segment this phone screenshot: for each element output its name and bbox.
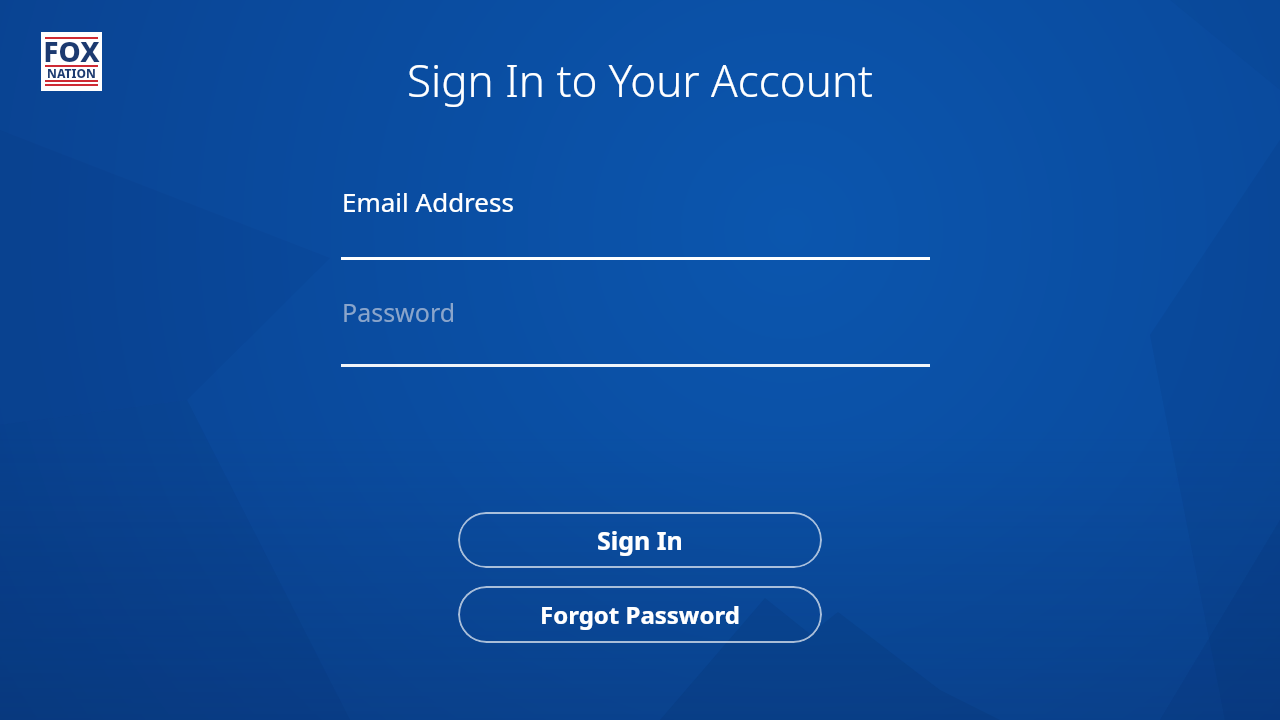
staticText: Sign In [597,523,683,557]
staticText: FOX [41,32,102,70]
button[interactable] [341,285,930,367]
staticText: Password [342,295,456,329]
button[interactable]: Forgot Password [458,586,822,643]
staticText: NATION [41,65,102,81]
staticText: Email Address [342,184,514,219]
staticText: Forgot Password [540,598,740,631]
staticText: Sign In to Your Account [0,50,1280,110]
button[interactable]: Sign In [458,512,822,568]
button[interactable] [341,175,930,260]
